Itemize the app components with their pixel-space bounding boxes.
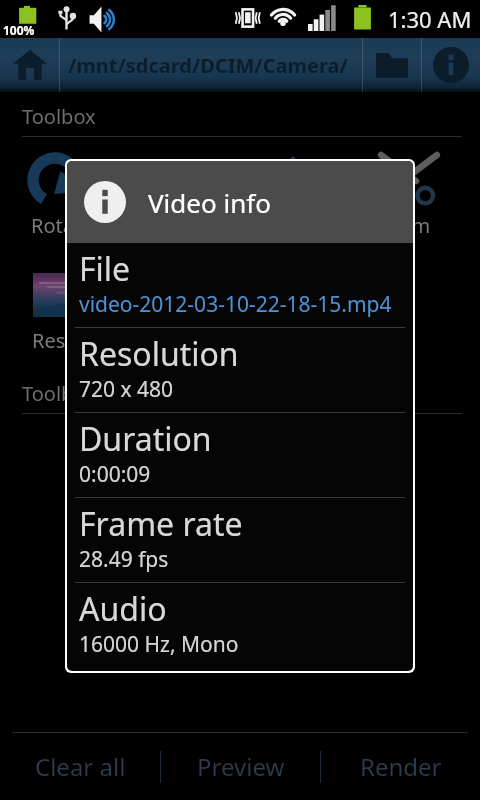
button[interactable]: Audio xyxy=(67,583,413,668)
staticText: Resolution xyxy=(79,332,239,376)
button[interactable]: Home xyxy=(0,38,59,92)
staticText: 0:00:09 xyxy=(79,460,151,489)
button[interactable] xyxy=(351,252,467,367)
staticText: /mnt/sdcard/DCIM/Camera/ xyxy=(68,52,348,79)
staticText: 100% xyxy=(3,22,35,38)
button[interactable]: Render xyxy=(321,733,480,800)
button[interactable]: Resolution xyxy=(67,328,413,413)
staticText: 720 x 480 xyxy=(79,375,174,404)
button[interactable]: File xyxy=(67,243,413,328)
button[interactable]: /mnt/sdcard/DCIM/Camera/ xyxy=(60,38,362,92)
button[interactable]: Crop xyxy=(235,137,351,252)
staticText: Trim xyxy=(388,212,431,239)
staticText: video-2012-03-10-22-18-15.mp4 xyxy=(79,290,392,319)
staticText: Toolbox xyxy=(22,103,96,130)
staticText: Video info xyxy=(148,185,271,220)
staticText: 1:30 AM xyxy=(388,4,472,34)
staticText: Clear all xyxy=(35,750,126,783)
staticText: Resize xyxy=(32,327,92,354)
staticText: Merge xyxy=(146,212,208,239)
staticText: Audio xyxy=(79,587,167,631)
staticText: Render xyxy=(360,750,442,783)
button[interactable]: Clear all xyxy=(0,733,160,800)
staticText: Duration xyxy=(79,417,212,461)
button[interactable]: Browse folder xyxy=(363,38,421,92)
button[interactable]: Rotate xyxy=(4,137,119,252)
staticText: File xyxy=(79,247,131,291)
button[interactable]: Merge xyxy=(119,137,235,252)
staticText: Rotate xyxy=(31,212,93,239)
staticText: Frame rate xyxy=(79,502,243,546)
staticText: Preview xyxy=(197,750,285,783)
button[interactable]: Resize xyxy=(4,252,119,367)
button[interactable] xyxy=(119,252,235,367)
button[interactable]: Trim xyxy=(351,137,467,252)
button[interactable]: Duration xyxy=(67,413,413,498)
staticText: 28.49 fps xyxy=(79,545,169,574)
button[interactable]: Preview xyxy=(161,733,320,800)
staticText: 16000 Hz, Mono xyxy=(79,630,239,659)
button[interactable] xyxy=(235,252,351,367)
button[interactable]: Info xyxy=(422,38,480,92)
staticText: Toolbox xyxy=(22,380,96,407)
button[interactable]: Frame rate xyxy=(67,498,413,583)
